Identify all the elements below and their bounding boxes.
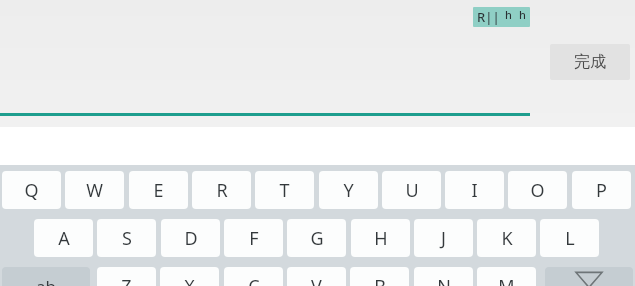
button[interactable]: Voice input [211, 251, 317, 286]
staticText: Z [121, 274, 132, 286]
button[interactable]: W [65, 171, 124, 209]
button[interactable]: G [287, 219, 346, 257]
staticText: A [58, 226, 70, 251]
staticText: X [184, 274, 195, 286]
staticText: J [441, 226, 446, 251]
staticText: C [248, 274, 260, 286]
button[interactable]: K [477, 219, 536, 257]
staticText: S [122, 226, 132, 251]
button[interactable]: Hide keyboard [529, 251, 635, 286]
staticText: H [374, 226, 388, 251]
button[interactable]: C [224, 267, 283, 286]
staticText: Y [343, 178, 354, 203]
staticText: W [86, 178, 103, 203]
button[interactable]: N [414, 267, 473, 286]
staticText: V [311, 274, 322, 286]
button[interactable]: Z [97, 267, 156, 286]
button[interactable]: Move cursor [317, 251, 423, 286]
button[interactable]: P [572, 171, 631, 209]
button[interactable]: M [477, 267, 536, 286]
staticText: G [310, 226, 324, 251]
staticText: R [216, 178, 228, 203]
staticText: B [374, 274, 386, 286]
staticText: ab [36, 275, 56, 286]
button[interactable]: U [382, 171, 441, 209]
button[interactable]: A [34, 219, 93, 257]
button[interactable]: R|| [473, 7, 530, 27]
button[interactable]: T [255, 171, 314, 209]
button[interactable]: Backspace [545, 267, 633, 286]
button[interactable]: Y [319, 171, 378, 209]
staticText: I [471, 178, 478, 203]
staticText: h [505, 7, 512, 22]
staticText: T [279, 178, 290, 203]
staticText: U [405, 178, 419, 203]
button[interactable]: S [97, 219, 156, 257]
button[interactable]: J [414, 219, 473, 257]
button[interactable]: Q [2, 171, 61, 209]
staticText: h [519, 7, 526, 22]
staticText: R|| [477, 8, 500, 26]
staticText: K [501, 226, 513, 251]
button[interactable]: H [351, 219, 410, 257]
button[interactable]: R [192, 171, 251, 209]
staticText: L [565, 226, 575, 251]
staticText: E [153, 178, 164, 203]
button[interactable]: ab [2, 267, 90, 286]
button[interactable]: V [287, 267, 346, 286]
button[interactable]: Settings [0, 251, 105, 286]
button[interactable]: X [160, 267, 219, 286]
button[interactable]: D [161, 219, 220, 257]
staticText: N [437, 274, 451, 286]
button[interactable]: O [508, 171, 567, 209]
button[interactable]: B [350, 267, 409, 286]
staticText: O [530, 178, 545, 203]
staticText: 完成 [574, 52, 606, 72]
staticText: D [184, 226, 198, 251]
button[interactable]: Keyboard layout [105, 251, 211, 286]
button[interactable]: I [445, 171, 504, 209]
staticText: F [249, 226, 259, 251]
staticText: M [498, 274, 515, 286]
staticText: Q [24, 178, 39, 203]
staticText: P [596, 178, 607, 203]
button[interactable]: E [129, 171, 188, 209]
button[interactable]: 完成 [550, 44, 630, 80]
button[interactable]: L [540, 219, 599, 257]
button[interactable]: Emoji [423, 251, 529, 286]
button[interactable]: F [224, 219, 283, 257]
